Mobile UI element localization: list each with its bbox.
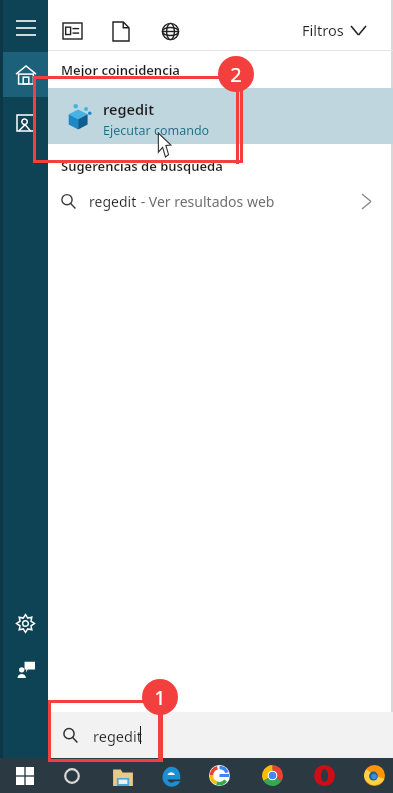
- staticText: Sugerencias de búsqueda: [61, 157, 223, 175]
- staticText: - Ver resultados web: [137, 192, 275, 211]
- button[interactable]: Web: [153, 16, 187, 46]
- button[interactable]: File Explorer: [104, 758, 142, 793]
- button[interactable]: Cortana: [53, 758, 91, 793]
- button[interactable]: Google: [200, 758, 238, 793]
- button[interactable]: Settings: [3, 602, 48, 644]
- staticText: Ejecutar comando: [103, 122, 210, 139]
- button[interactable]: Feedback: [3, 648, 48, 690]
- button[interactable]: Start: [6, 758, 44, 793]
- staticText: Filtros: [302, 20, 344, 40]
- button[interactable]: regedit: [48, 183, 393, 219]
- button[interactable]: Documents: [104, 16, 138, 46]
- staticText: Mejor coincidencia: [61, 61, 180, 79]
- button[interactable]: Menu: [3, 8, 48, 48]
- staticText: regedit: [93, 726, 142, 746]
- button[interactable]: regedit: [48, 88, 393, 144]
- button[interactable]: Opera: [305, 758, 343, 793]
- button[interactable]: Pictures: [3, 102, 48, 144]
- staticText: 1: [154, 684, 166, 711]
- button[interactable]: Firefox: [355, 758, 393, 793]
- button[interactable]: regedit: [48, 712, 393, 758]
- button[interactable]: Filtros: [302, 14, 366, 46]
- button[interactable]: Apps: [55, 16, 89, 46]
- button[interactable]: Microsoft Edge: [152, 758, 190, 793]
- staticText: regedit: [103, 99, 155, 119]
- button[interactable]: Home: [3, 52, 48, 97]
- button[interactable]: Google Chrome: [253, 758, 291, 793]
- staticText: 2: [230, 61, 242, 88]
- staticText: regedit: [89, 192, 137, 211]
